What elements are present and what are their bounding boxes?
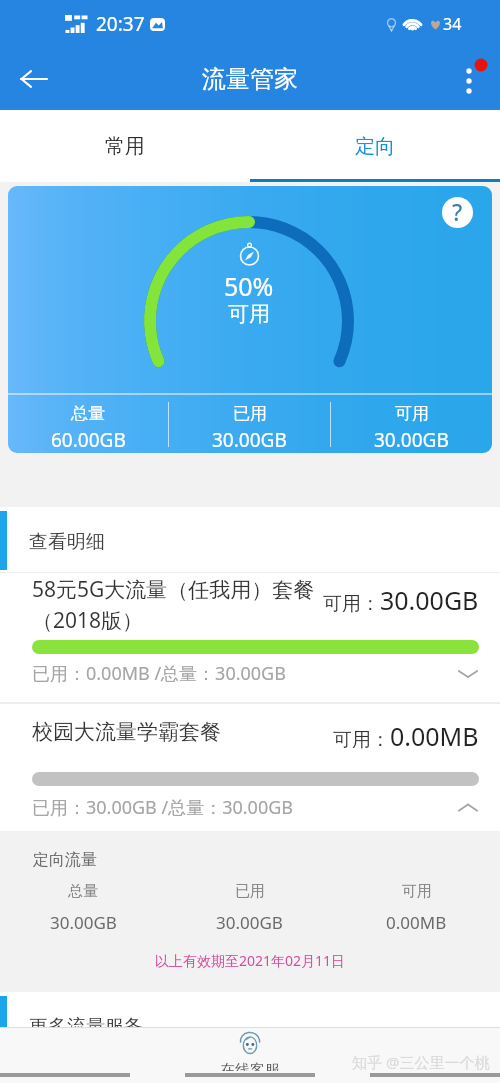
button[interactable]: Help xyxy=(442,197,473,228)
staticText: （2018版） xyxy=(32,606,144,635)
staticText: 已用：0.00MB /总量：30.00GB xyxy=(32,661,457,686)
staticText: 34 xyxy=(443,13,462,35)
staticText: 可用： xyxy=(333,728,390,752)
staticText: 可用 xyxy=(228,301,270,327)
staticText: 已用 xyxy=(235,882,265,901)
staticText: 流量管家 xyxy=(202,64,298,94)
button[interactable]: 已用 xyxy=(169,395,330,453)
staticText: 常用 xyxy=(105,134,145,159)
staticText: 30.00GB xyxy=(374,427,449,453)
button[interactable]: 常用 xyxy=(0,110,250,182)
staticText: 50% xyxy=(224,269,274,303)
staticText: 总量 xyxy=(68,882,98,901)
button[interactable]: More options xyxy=(446,56,492,102)
button[interactable]: 校园大流量学霸套餐 xyxy=(0,704,500,831)
staticText: 定向 xyxy=(355,134,395,159)
staticText: 30.00GB xyxy=(50,911,117,934)
staticText: 已用：30.00GB /总量：30.00GB xyxy=(32,795,457,820)
staticText: 已用 xyxy=(233,403,267,424)
staticText: 知乎 @三公里一个桃 xyxy=(352,1052,490,1071)
staticText: 在线客服 xyxy=(220,1061,280,1071)
staticText: 可用 xyxy=(402,882,432,901)
staticText: 以上有效期至2021年02月11日 xyxy=(0,951,500,970)
staticText: 30.00GB xyxy=(216,911,283,934)
button[interactable]: 可用 xyxy=(331,395,492,453)
staticText: 58元5G大流量（任我用）套餐 xyxy=(32,575,315,604)
staticText: 30.00GB xyxy=(212,427,287,453)
staticText: 定向流量 xyxy=(33,850,97,870)
staticText: 更多流量服务 xyxy=(29,1015,143,1039)
staticText: 校园大流量学霸套餐 xyxy=(32,719,221,745)
staticText: 查看明细 xyxy=(29,530,105,554)
staticText: ? xyxy=(452,197,463,227)
staticText: 30.00GB xyxy=(380,583,479,617)
staticText: 可用： xyxy=(323,592,380,616)
staticText: 可用 xyxy=(395,403,429,424)
staticText: 0.00MB xyxy=(390,719,479,753)
button[interactable]: 定向 xyxy=(250,110,500,182)
staticText: 总量 xyxy=(71,403,105,424)
staticText: 20:37 xyxy=(96,11,145,37)
staticText: 60.00GB xyxy=(51,427,126,453)
button[interactable]: 总量 xyxy=(8,395,168,453)
button[interactable]: 在线客服 xyxy=(220,1028,280,1071)
button[interactable]: 58元5G大流量（任我用）套餐 xyxy=(0,573,500,702)
button[interactable]: Back xyxy=(10,55,58,103)
staticText: 0.00MB xyxy=(386,911,447,934)
